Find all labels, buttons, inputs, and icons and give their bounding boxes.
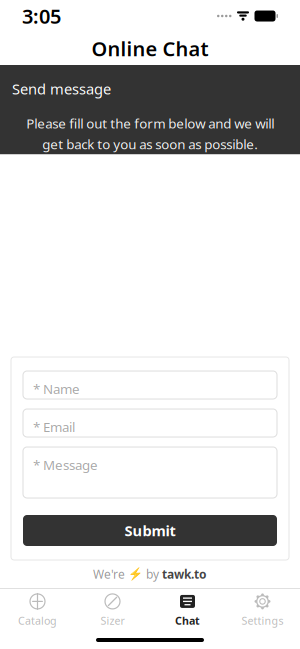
staticText: * Message xyxy=(33,456,98,474)
staticText: 3:05 xyxy=(22,3,61,29)
staticText: Please fill out the form below and we wi… xyxy=(26,114,274,153)
staticText: Catalog xyxy=(18,613,57,628)
staticText: tawk.to xyxy=(162,566,207,582)
button[interactable]: * Message xyxy=(23,447,277,498)
staticText: Sizer xyxy=(100,613,124,628)
staticText: * Email xyxy=(33,418,75,436)
staticText: * Name xyxy=(33,380,80,398)
staticText: Submit xyxy=(124,521,175,540)
button[interactable]: Sizer xyxy=(75,589,150,631)
staticText: Online Chat xyxy=(91,35,208,62)
button[interactable]: Chat xyxy=(150,589,225,631)
staticText: We're xyxy=(93,566,125,582)
staticText: Chat xyxy=(175,613,200,628)
button[interactable]: * Name xyxy=(23,371,277,399)
button[interactable]: Catalog xyxy=(0,589,75,631)
staticText: Settings xyxy=(241,613,283,628)
staticText: Send message xyxy=(12,79,111,98)
button[interactable]: Submit xyxy=(23,515,277,546)
button[interactable]: * Email xyxy=(23,409,277,437)
button[interactable]: Settings xyxy=(225,589,300,631)
staticText: ⚡ xyxy=(128,567,143,581)
staticText: by xyxy=(146,566,159,582)
